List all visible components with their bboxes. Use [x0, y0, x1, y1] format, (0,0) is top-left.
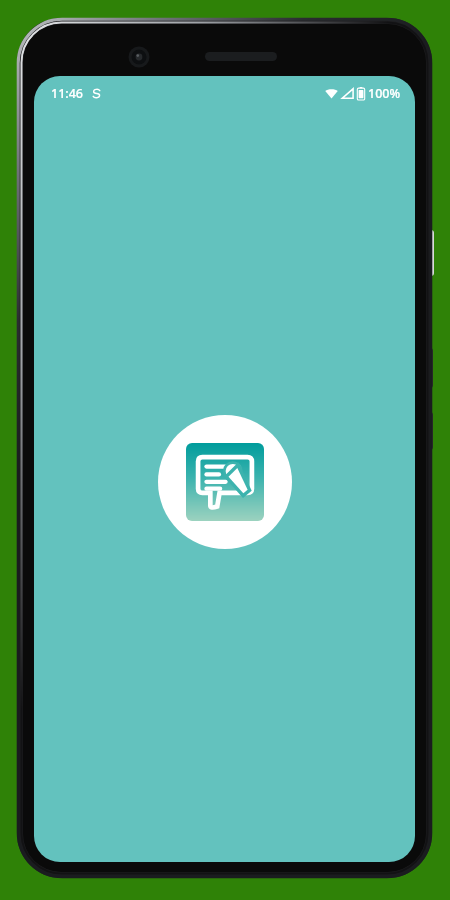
button[interactable]: App logo	[157, 414, 293, 550]
staticText: 11:46	[51, 85, 84, 102]
staticText: 100%	[368, 85, 401, 102]
